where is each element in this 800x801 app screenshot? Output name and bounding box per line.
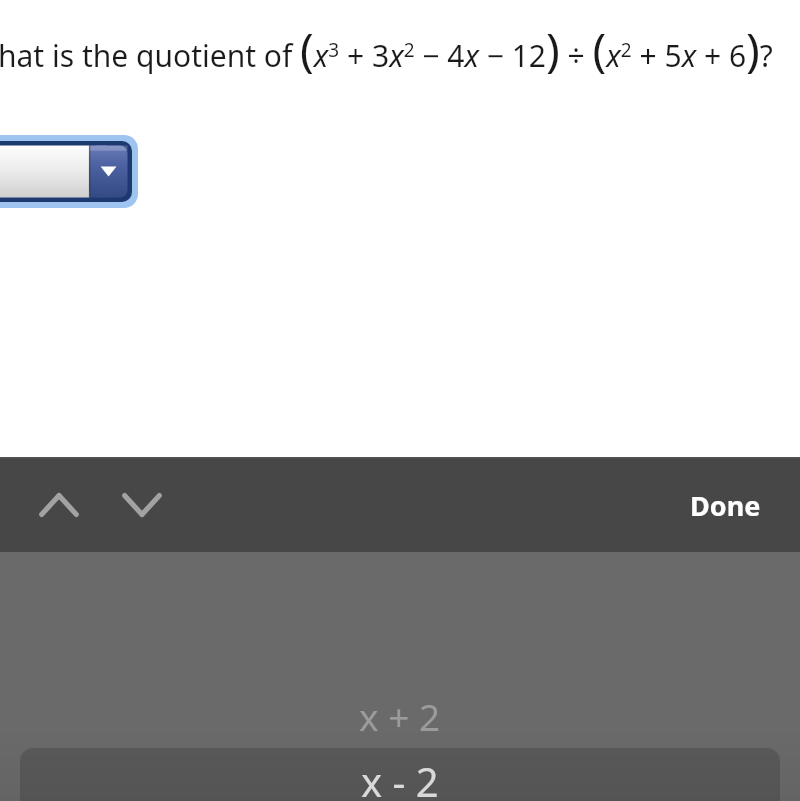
staticText: Done bbox=[690, 487, 761, 524]
button[interactable]: x + 2 bbox=[20, 686, 780, 746]
button[interactable]: Next field bbox=[115, 478, 169, 532]
staticText: x - 2 bbox=[361, 754, 439, 801]
button[interactable]: Answer dropdown bbox=[0, 135, 138, 208]
staticText: hat is the quotient of (x3 + 3x2 − 4x − … bbox=[0, 18, 773, 80]
button[interactable]: x - 2 bbox=[20, 748, 780, 801]
button[interactable]: Previous field bbox=[32, 478, 86, 532]
button[interactable]: Done bbox=[668, 474, 782, 536]
staticText: x + 2 bbox=[359, 691, 441, 741]
